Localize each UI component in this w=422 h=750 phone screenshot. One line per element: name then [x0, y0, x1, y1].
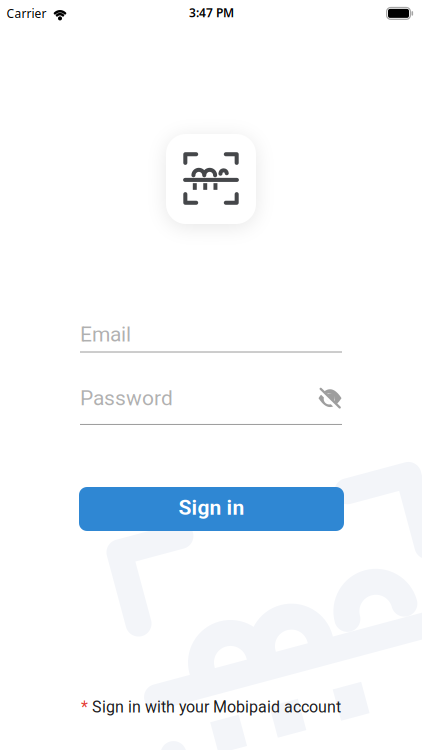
- staticText: Carrier: [6, 5, 46, 21]
- staticText: Sign in: [178, 495, 244, 520]
- staticText: *: [81, 698, 88, 716]
- button[interactable]: Show password: [318, 388, 342, 408]
- staticText: Email: [80, 322, 131, 346]
- button[interactable]: Sign in: [79, 487, 344, 531]
- staticText: Sign in with your Mobipaid account: [88, 698, 341, 716]
- button[interactable]: Password: [80, 386, 342, 425]
- staticText: 3:47 PM: [189, 4, 234, 20]
- button[interactable]: Email: [80, 322, 342, 352]
- staticText: Password: [80, 386, 173, 410]
